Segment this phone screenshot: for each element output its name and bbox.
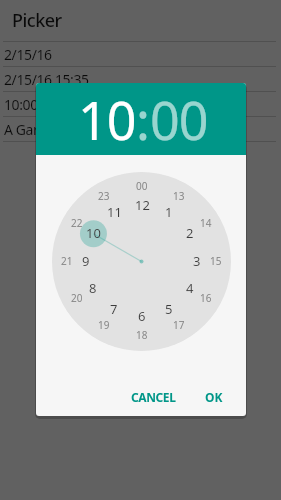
staticText: 2/15/16 <box>4 45 52 64</box>
staticText: A Garden <box>4 120 63 139</box>
staticText: 4 <box>186 279 194 297</box>
staticText: 12 <box>135 196 150 214</box>
staticText: 2/15/16 15:35 <box>4 70 89 89</box>
staticText: 10:00 <box>4 95 38 114</box>
button[interactable]: OK <box>197 379 231 415</box>
staticText: : <box>136 84 150 155</box>
staticText: OK <box>205 389 223 405</box>
staticText: CANCEL <box>131 389 176 405</box>
button[interactable]: 2/15/16 <box>0 42 281 66</box>
staticText: 11 <box>107 203 122 221</box>
staticText: 00 <box>150 84 208 155</box>
staticText: 8 <box>89 279 97 297</box>
staticText: 9 <box>82 252 90 270</box>
staticText: 19 <box>98 318 110 332</box>
staticText: 1 <box>165 203 173 221</box>
staticText: 17 <box>173 318 185 332</box>
button[interactable]: 10:00 <box>0 92 281 116</box>
staticText: 18 <box>136 328 148 342</box>
staticText: 20 <box>71 291 83 305</box>
staticText: 6 <box>138 307 146 325</box>
button[interactable]: A Garden <box>0 117 281 141</box>
staticText: Picker <box>12 8 62 33</box>
staticText: 13 <box>173 189 185 203</box>
staticText: 10 <box>86 224 101 242</box>
staticText: 22 <box>71 216 83 230</box>
staticText: 14 <box>200 216 212 230</box>
staticText: 00 <box>136 179 148 193</box>
button[interactable]: 2/15/16 15:35 <box>0 67 281 91</box>
staticText: 16 <box>200 291 212 305</box>
staticText: 21 <box>61 254 73 268</box>
staticText: 10 <box>78 84 136 155</box>
staticText: 3 <box>193 252 201 270</box>
staticText: 5 <box>165 300 173 318</box>
staticText: 15 <box>210 254 222 268</box>
staticText: 23 <box>98 189 110 203</box>
button[interactable]: CANCEL <box>123 379 184 415</box>
staticText: 2 <box>186 224 194 242</box>
staticText: 7 <box>110 300 118 318</box>
